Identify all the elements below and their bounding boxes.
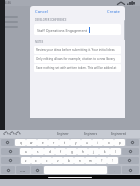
staticText: Engineered (111, 132, 127, 136)
staticText: Engineer (57, 132, 69, 136)
button[interactable]: Backspace (122, 148, 139, 155)
staticText: Review your ideas before submitting it. … (36, 48, 119, 52)
button[interactable]: z (21, 157, 31, 164)
button[interactable]: y (70, 139, 81, 146)
button[interactable]: Voice input (31, 166, 43, 174)
button[interactable]: Shift (1, 148, 19, 155)
staticText: h (82, 150, 84, 154)
button[interactable]: e (37, 139, 48, 146)
staticText: Only editing allows for example, citatio… (36, 57, 119, 61)
button[interactable]: Numbers (16, 166, 30, 174)
button[interactable]: k (99, 148, 110, 155)
button[interactable]: m (85, 157, 96, 164)
button[interactable]: p (114, 139, 125, 146)
staticText: Create (107, 9, 120, 15)
staticText: y (75, 141, 77, 145)
staticText: d (49, 150, 51, 154)
staticText: DEVELOPER CONFERENCE (35, 18, 67, 22)
button[interactable]: Shift (1, 139, 14, 146)
button[interactable]: s (32, 148, 44, 155)
button[interactable]: Redo (9, 131, 15, 137)
button[interactable]: Engineer (49, 132, 77, 136)
staticText: Staff Operations Engagement (37, 28, 88, 33)
button[interactable]: Clipboard (15, 131, 21, 137)
button[interactable]: Undo (3, 131, 9, 137)
button[interactable]: r (48, 139, 59, 146)
staticText: t (64, 141, 66, 145)
staticText: ?123 (20, 169, 26, 172)
staticText: g (71, 150, 73, 154)
button[interactable]: ! (107, 157, 118, 164)
staticText: j (93, 150, 94, 154)
staticText: q (20, 141, 22, 145)
staticText: Engineers (84, 132, 98, 136)
staticText: Cancel (35, 9, 49, 15)
staticText: l (115, 150, 116, 154)
staticText: ? (101, 159, 103, 163)
button[interactable]: Review your ideas before submitting it. … (34, 46, 121, 54)
staticText: r (53, 141, 55, 145)
staticText: w (30, 141, 33, 145)
button[interactable]: d (44, 148, 55, 155)
staticText: f (60, 150, 62, 154)
button[interactable]: Engineers (77, 132, 105, 136)
staticText: Save nothing set with written token. Thi… (36, 66, 119, 70)
staticText: m (89, 159, 92, 163)
staticText: x (35, 159, 37, 163)
button[interactable]: v (52, 157, 63, 164)
button[interactable]: u (81, 139, 92, 146)
button[interactable]: i (92, 139, 103, 146)
staticText: a (25, 150, 27, 154)
button[interactable]: Enter (122, 166, 139, 174)
staticText: ! (112, 159, 113, 163)
button[interactable]: ? (96, 157, 107, 164)
staticText: v (57, 159, 59, 163)
button[interactable]: c (41, 157, 52, 164)
button[interactable]: Backspace (126, 139, 139, 146)
button[interactable]: Backspace (119, 157, 139, 164)
staticText: e (42, 141, 44, 145)
staticText: 14:36 (3, 1, 12, 5)
staticText: k (104, 150, 106, 154)
staticText: o (108, 141, 110, 145)
button[interactable]: j (88, 148, 99, 155)
button[interactable]: o (103, 139, 114, 146)
staticText: c (46, 159, 48, 163)
staticText: u (86, 141, 88, 145)
button[interactable]: h (77, 148, 88, 155)
staticText: i (97, 141, 98, 145)
button[interactable]: f (55, 148, 66, 155)
staticText: n (79, 159, 81, 163)
button[interactable]: q (15, 139, 26, 146)
staticText: b (68, 159, 70, 163)
button[interactable]: l (110, 148, 121, 155)
button[interactable]: Staff Operations Engagement (34, 24, 121, 35)
button[interactable]: Emoji (1, 166, 15, 174)
button[interactable]: Save nothing set with written token. Thi… (34, 64, 121, 72)
staticText: p (119, 141, 121, 145)
button[interactable]: g (66, 148, 77, 155)
button[interactable]: w (26, 139, 37, 146)
button[interactable]: Shift (1, 157, 20, 164)
staticText: NOTES (35, 40, 44, 44)
staticText: s (37, 150, 39, 154)
button[interactable]: Only editing allows for example, citatio… (34, 55, 121, 63)
button[interactable]: n (74, 157, 85, 164)
button[interactable]: Cancel (34, 8, 50, 16)
button[interactable]: a (20, 148, 32, 155)
staticText: z (25, 159, 27, 163)
button[interactable]: t (59, 139, 70, 146)
button[interactable]: x (31, 157, 41, 164)
button[interactable]: Engineered (105, 132, 133, 136)
button[interactable]: b (63, 157, 74, 164)
button[interactable]: Create (106, 8, 121, 16)
